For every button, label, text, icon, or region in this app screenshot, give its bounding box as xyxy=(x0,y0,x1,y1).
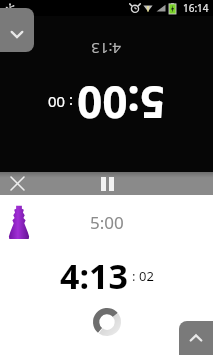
staticText: 4:13 xyxy=(91,39,121,59)
staticText: 16:14 xyxy=(183,1,209,15)
staticText: 00 xyxy=(47,93,65,113)
staticText: 4:13 xyxy=(60,253,128,299)
button[interactable]: 5:00 xyxy=(0,16,213,172)
other: Player piece xyxy=(8,205,30,239)
staticText: : xyxy=(68,93,73,113)
staticText: 02 xyxy=(139,267,154,285)
button[interactable]: Player piece xyxy=(0,195,213,355)
button[interactable]: Close xyxy=(0,172,34,195)
staticText: 5:00 xyxy=(77,73,165,133)
staticText: 5:00 xyxy=(90,211,124,234)
staticText: : xyxy=(132,267,136,285)
button[interactable]: Collapse xyxy=(0,8,34,52)
button[interactable]: Pause xyxy=(87,172,127,195)
button[interactable]: Expand xyxy=(179,321,213,355)
